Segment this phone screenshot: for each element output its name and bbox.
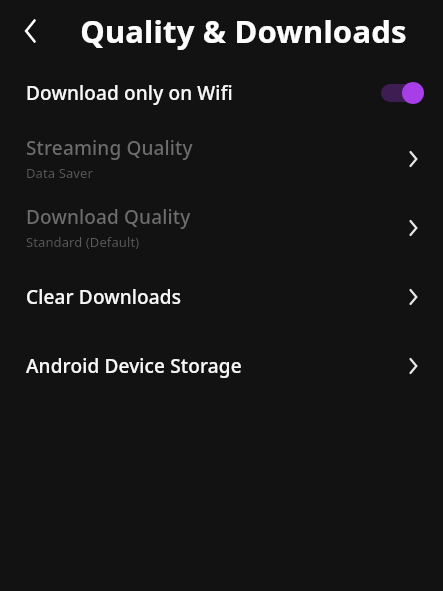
staticText: Quality & Downloads xyxy=(80,10,407,52)
staticText: Download Quality xyxy=(26,204,191,230)
staticText: Standard (Default) xyxy=(26,233,140,251)
staticText: Android Device Storage xyxy=(26,353,242,379)
button[interactable]: Download Quality xyxy=(0,193,443,262)
staticText: Streaming Quality xyxy=(26,135,193,161)
button[interactable]: Download only on Wifi xyxy=(0,62,443,124)
staticText: Data Saver xyxy=(26,164,93,182)
button[interactable]: Back xyxy=(9,9,53,53)
staticText: Download only on Wifi xyxy=(26,80,380,106)
button[interactable]: Download only on Wifi toggle xyxy=(380,80,424,106)
button[interactable]: Android Device Storage xyxy=(0,331,443,400)
button[interactable]: Clear Downloads xyxy=(0,262,443,331)
staticText: Clear Downloads xyxy=(26,284,182,310)
button[interactable]: Streaming Quality xyxy=(0,124,443,193)
